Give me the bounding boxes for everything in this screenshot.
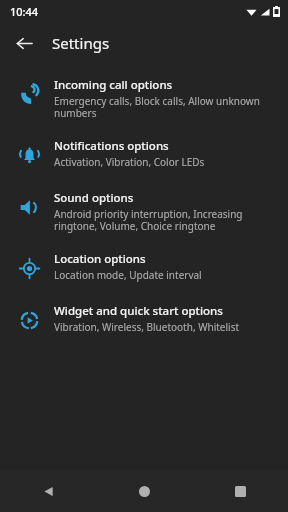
staticText: Location options bbox=[54, 251, 146, 267]
staticText: Incoming call options bbox=[54, 77, 173, 93]
staticText: Widget and quick start options bbox=[54, 303, 223, 319]
button[interactable]: Recent apps bbox=[192, 470, 288, 512]
button[interactable]: Sound options bbox=[0, 181, 288, 242]
staticText: Android priority interruption, Increasin… bbox=[54, 207, 274, 233]
staticText: Activation, Vibration, Color LEDs bbox=[54, 155, 205, 169]
button[interactable]: Widget and quick start options bbox=[0, 294, 288, 346]
staticText: Location mode, Update interval bbox=[54, 268, 202, 282]
staticText: 10:44 bbox=[10, 4, 39, 19]
staticText: Sound options bbox=[54, 190, 134, 206]
staticText: Notifications options bbox=[54, 138, 169, 154]
staticText: Settings bbox=[52, 33, 110, 53]
button[interactable]: Home bbox=[96, 470, 192, 512]
button[interactable]: Incoming call options bbox=[0, 68, 288, 129]
button[interactable]: Back bbox=[6, 25, 42, 61]
button[interactable]: Location options bbox=[0, 242, 288, 294]
staticText: Emergency calls, Block calls, Allow unkn… bbox=[54, 94, 274, 120]
staticText: Vibration, Wireless, Bluetooth, Whitelis… bbox=[54, 320, 240, 334]
button[interactable]: Notifications options bbox=[0, 129, 288, 181]
button[interactable]: Back bbox=[0, 470, 96, 512]
